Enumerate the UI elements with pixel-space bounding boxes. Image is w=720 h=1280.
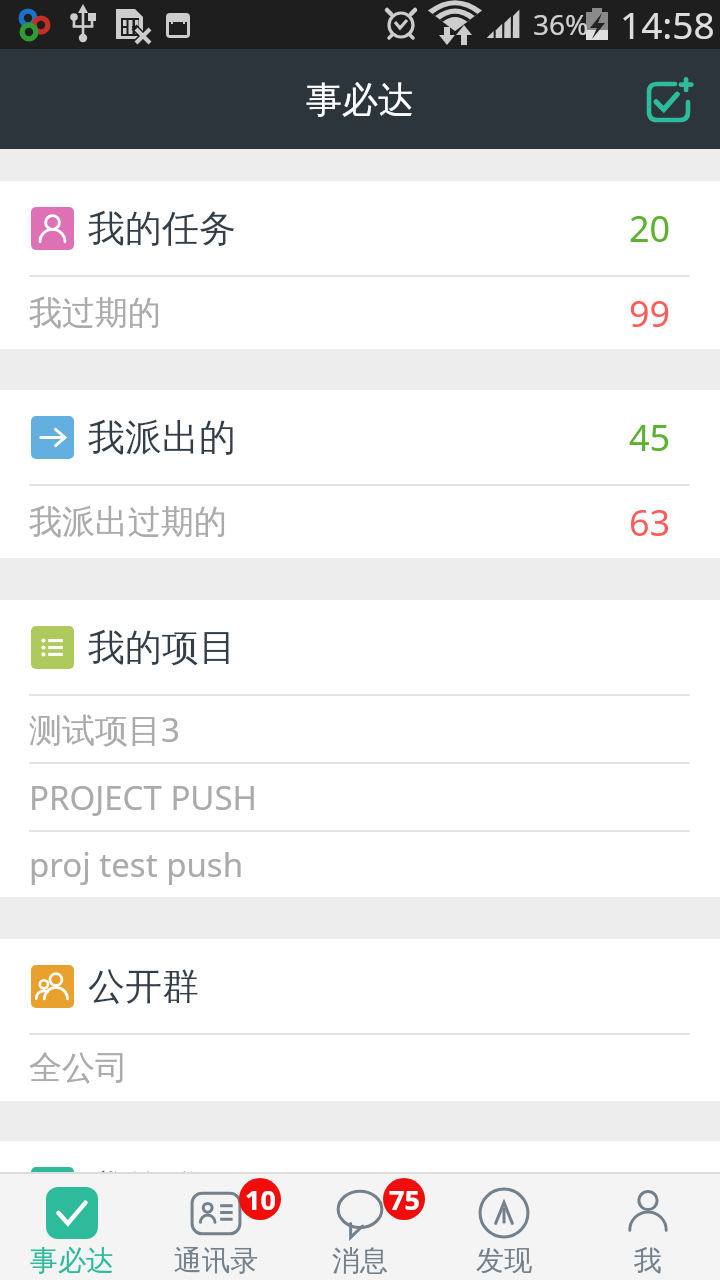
button[interactable]: 公开群 <box>0 939 720 1033</box>
staticText: 公开群 <box>88 963 199 1010</box>
staticText: PROJECT PUSH <box>29 775 258 820</box>
staticText: 我过期的 <box>29 292 161 334</box>
staticText: 消息 <box>332 1243 388 1278</box>
staticText: 我的任务 <box>88 205 236 252</box>
button[interactable]: 通讯录 <box>144 1174 288 1280</box>
button[interactable]: 我派出过期的 <box>0 486 720 558</box>
staticText: 20 <box>629 204 671 253</box>
staticText: 我的群 <box>88 1165 199 1172</box>
staticText: 我派出的 <box>88 414 236 461</box>
staticText: 63 <box>629 498 671 547</box>
staticText: 14:58 <box>620 0 715 48</box>
button[interactable]: proj test push <box>0 832 720 897</box>
button[interactable]: 发现 <box>432 1174 576 1280</box>
button[interactable]: 全公司 <box>0 1035 720 1101</box>
staticText: 10 <box>245 1181 276 1218</box>
staticText: 全公司 <box>29 1047 128 1089</box>
staticText: 我的项目 <box>88 624 236 671</box>
staticText: 99 <box>629 289 671 338</box>
staticText: proj test push <box>29 842 244 887</box>
staticText: 通讯录 <box>174 1243 258 1278</box>
staticText: 发现 <box>476 1243 532 1278</box>
button[interactable]: 我的任务 <box>0 181 720 275</box>
button[interactable]: 我的项目 <box>0 600 720 694</box>
button[interactable]: PROJECT PUSH <box>0 764 720 830</box>
button[interactable]: 我 <box>576 1174 720 1280</box>
button[interactable]: 消息 <box>288 1174 432 1280</box>
staticText: 我 <box>634 1243 662 1278</box>
button[interactable]: New task <box>632 61 708 137</box>
staticText: 36% <box>533 5 589 43</box>
button[interactable]: 我的群 <box>0 1141 720 1172</box>
button[interactable]: 我派出的 <box>0 390 720 484</box>
staticText: 事必达 <box>306 77 414 122</box>
staticText: 测试项目3 <box>29 707 180 752</box>
button[interactable]: 我过期的 <box>0 277 720 349</box>
staticText: 75 <box>389 1181 420 1218</box>
button[interactable]: 测试项目3 <box>0 696 720 762</box>
staticText: 我派出过期的 <box>29 501 227 543</box>
staticText: 45 <box>629 413 671 462</box>
button[interactable]: 事必达 <box>0 1174 144 1280</box>
staticText: 事必达 <box>30 1243 114 1278</box>
